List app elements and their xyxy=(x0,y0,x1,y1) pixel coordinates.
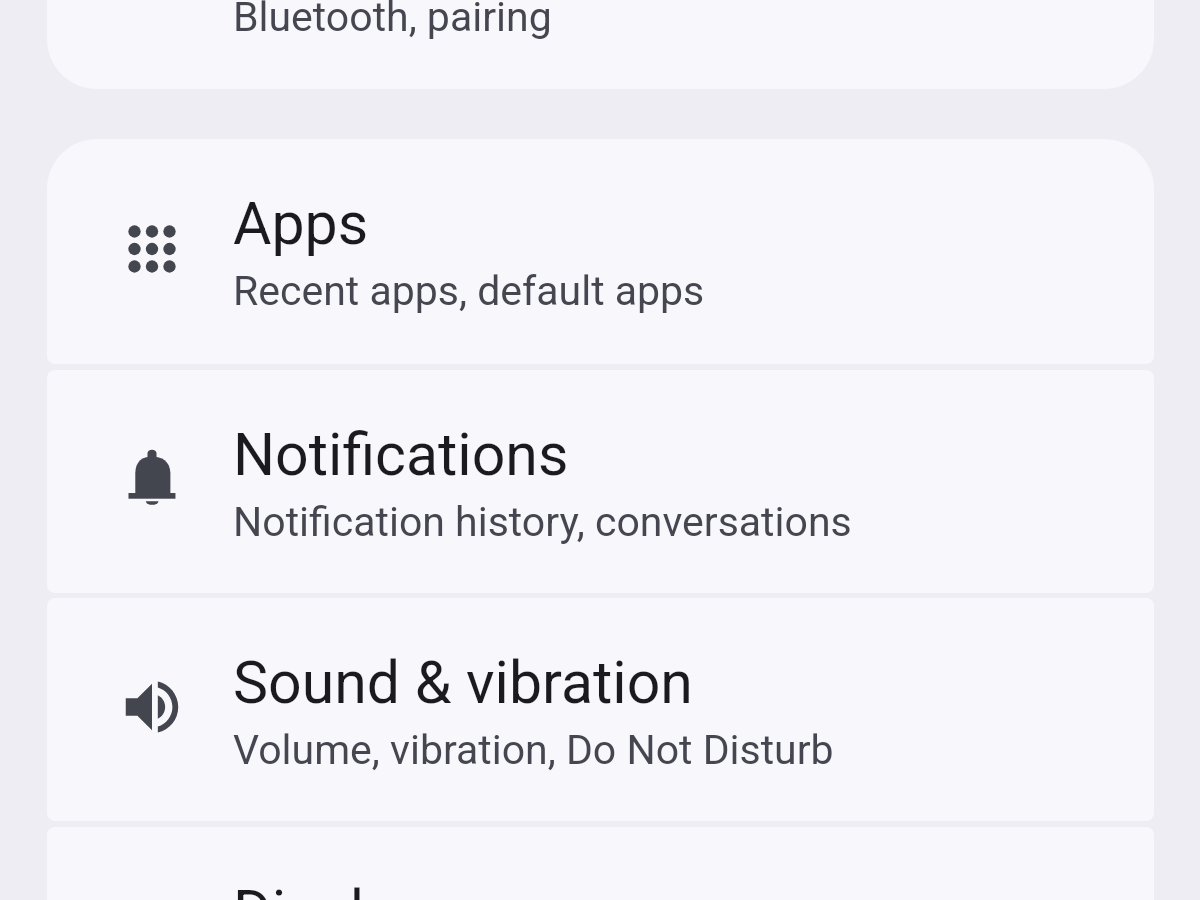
staticText: Notification history, conversations xyxy=(233,498,852,546)
staticText: Sound & vibration xyxy=(233,648,693,717)
other: Sound and vibration xyxy=(117,672,187,742)
staticText: Volume, vibration, Do Not Disturb xyxy=(233,726,834,774)
button[interactable]: Sound and vibration xyxy=(47,598,1154,821)
button[interactable]: Connected devices xyxy=(47,0,1154,89)
staticText: Notifications xyxy=(233,420,569,489)
button[interactable]: Display xyxy=(47,827,1154,900)
staticText: Bluetooth, pairing xyxy=(233,0,552,41)
staticText: Display xyxy=(233,877,424,900)
other: Notifications xyxy=(117,443,187,513)
staticText: Recent apps, default apps xyxy=(233,267,705,315)
staticText: Apps xyxy=(233,189,369,258)
button[interactable]: Notifications xyxy=(47,370,1154,593)
button[interactable]: Apps xyxy=(47,139,1154,364)
other: Apps xyxy=(117,214,187,284)
